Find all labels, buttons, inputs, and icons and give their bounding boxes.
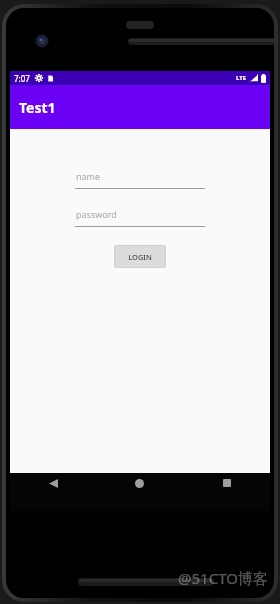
staticText: LOGIN [128,252,152,262]
button[interactable]: LOGIN [114,245,166,268]
staticText: 7:07 [14,73,30,84]
button[interactable]: name [75,169,205,189]
staticText: name [76,170,101,182]
button[interactable]: Home [96,473,183,511]
staticText: LTE [236,74,247,82]
staticText: password [76,208,117,220]
staticText: @51CTO博客 [178,568,268,588]
staticText: Test1 [19,98,56,117]
button[interactable]: Recent apps [183,473,270,511]
button[interactable]: password [75,207,205,227]
button[interactable]: Back [10,473,96,511]
